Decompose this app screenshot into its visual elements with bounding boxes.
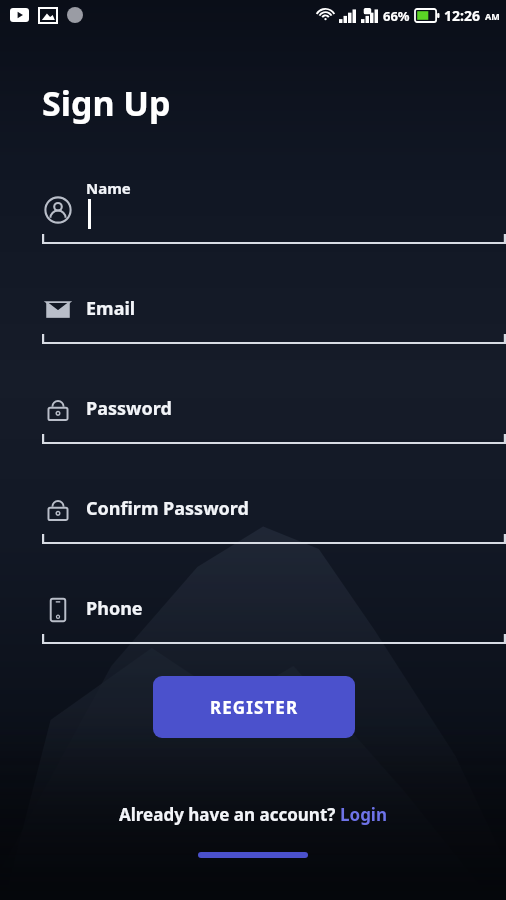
staticText: 12:26 bbox=[444, 6, 480, 25]
button[interactable]: Confirm Password bbox=[0, 468, 506, 568]
staticText: Password bbox=[86, 396, 172, 421]
staticText: REGISTER bbox=[210, 696, 299, 719]
button[interactable]: Name bbox=[0, 168, 506, 268]
staticText: Login bbox=[340, 803, 388, 826]
staticText: AM bbox=[485, 10, 500, 22]
staticText: Name bbox=[86, 178, 131, 198]
staticText: Confirm Password bbox=[86, 496, 249, 521]
staticText: Already have an account? bbox=[119, 803, 340, 826]
staticText: 66% bbox=[383, 7, 410, 25]
staticText: Email bbox=[86, 296, 136, 321]
button[interactable]: Phone bbox=[0, 568, 506, 668]
button[interactable]: Password bbox=[0, 368, 506, 468]
button[interactable]: REGISTER bbox=[153, 676, 355, 738]
button[interactable]: Email bbox=[0, 268, 506, 368]
staticText: Phone bbox=[86, 596, 143, 621]
button[interactable]: Already have an account? bbox=[119, 803, 388, 826]
staticText: Sign Up bbox=[42, 80, 171, 126]
